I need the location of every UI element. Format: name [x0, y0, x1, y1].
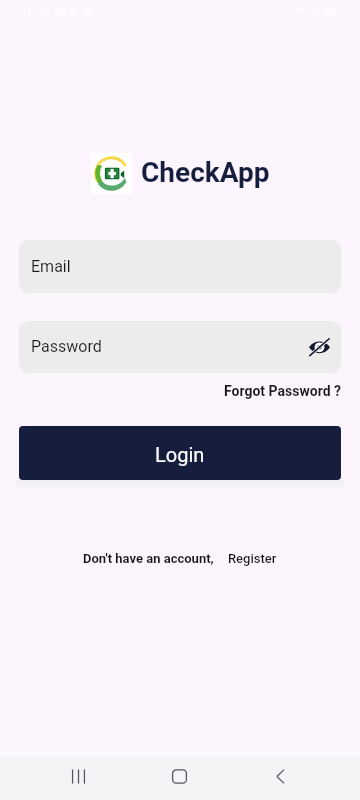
staticText: Don't have an account,: [83, 551, 214, 566]
button[interactable]: Home: [155, 753, 204, 800]
button[interactable]: Show password: [302, 330, 336, 364]
button[interactable]: Login: [19, 426, 341, 480]
button[interactable]: Recent apps: [54, 753, 103, 800]
button[interactable]: Back: [256, 753, 305, 800]
staticText: Login: [155, 443, 205, 466]
staticText: Email: [31, 257, 71, 276]
button[interactable]: Email: [19, 240, 341, 293]
staticText: CheckApp: [141, 156, 270, 189]
button[interactable]: Forgot Password ?: [224, 383, 341, 399]
button[interactable]: Password: [19, 321, 341, 373]
staticText: Password: [31, 337, 102, 356]
button[interactable]: Register: [228, 551, 277, 566]
